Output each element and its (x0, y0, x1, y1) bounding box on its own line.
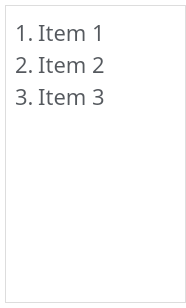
staticText: Item 2 (38, 49, 105, 79)
button[interactable]: 2. (5, 48, 186, 80)
staticText: Item 1 (38, 17, 105, 47)
staticText: Item 3 (38, 81, 105, 111)
staticText: 1. (15, 17, 34, 47)
button[interactable]: 3. (5, 80, 186, 112)
staticText: 3. (15, 81, 34, 111)
staticText: 2. (15, 49, 34, 79)
button[interactable]: 1. (5, 16, 186, 48)
